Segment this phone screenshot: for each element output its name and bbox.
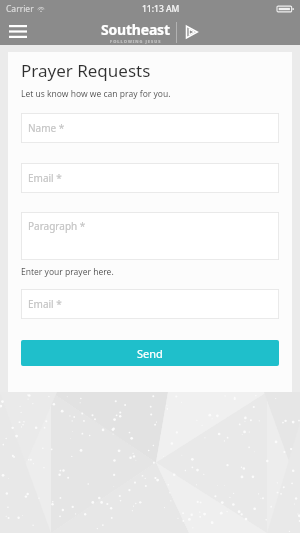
staticText: Email *	[28, 297, 62, 311]
staticText: FOLLOWING JESUS	[110, 39, 162, 44]
button[interactable]: Email *	[21, 289, 279, 319]
staticText: Paragraph *	[28, 219, 86, 233]
staticText: Prayer Requests	[21, 59, 151, 82]
button[interactable]: Watch media	[182, 23, 200, 41]
staticText: Southeast	[101, 20, 170, 39]
button[interactable]: Name *	[21, 113, 279, 143]
button[interactable]: Southeast	[101, 20, 200, 44]
staticText: Email *	[28, 171, 62, 185]
staticText: Send	[137, 346, 163, 361]
button[interactable]: Email *	[21, 163, 279, 193]
staticText: Let us know how we can pray for you.	[21, 88, 171, 100]
staticText: Name *	[28, 121, 65, 135]
button[interactable]: Send	[21, 340, 279, 366]
button[interactable]: Open navigation menu	[4, 18, 32, 45]
button[interactable]: Paragraph *	[21, 212, 279, 260]
staticText: Enter your prayer here.	[21, 266, 114, 278]
staticText: Carrier	[6, 3, 34, 15]
staticText: 11:13 AM	[142, 3, 180, 15]
